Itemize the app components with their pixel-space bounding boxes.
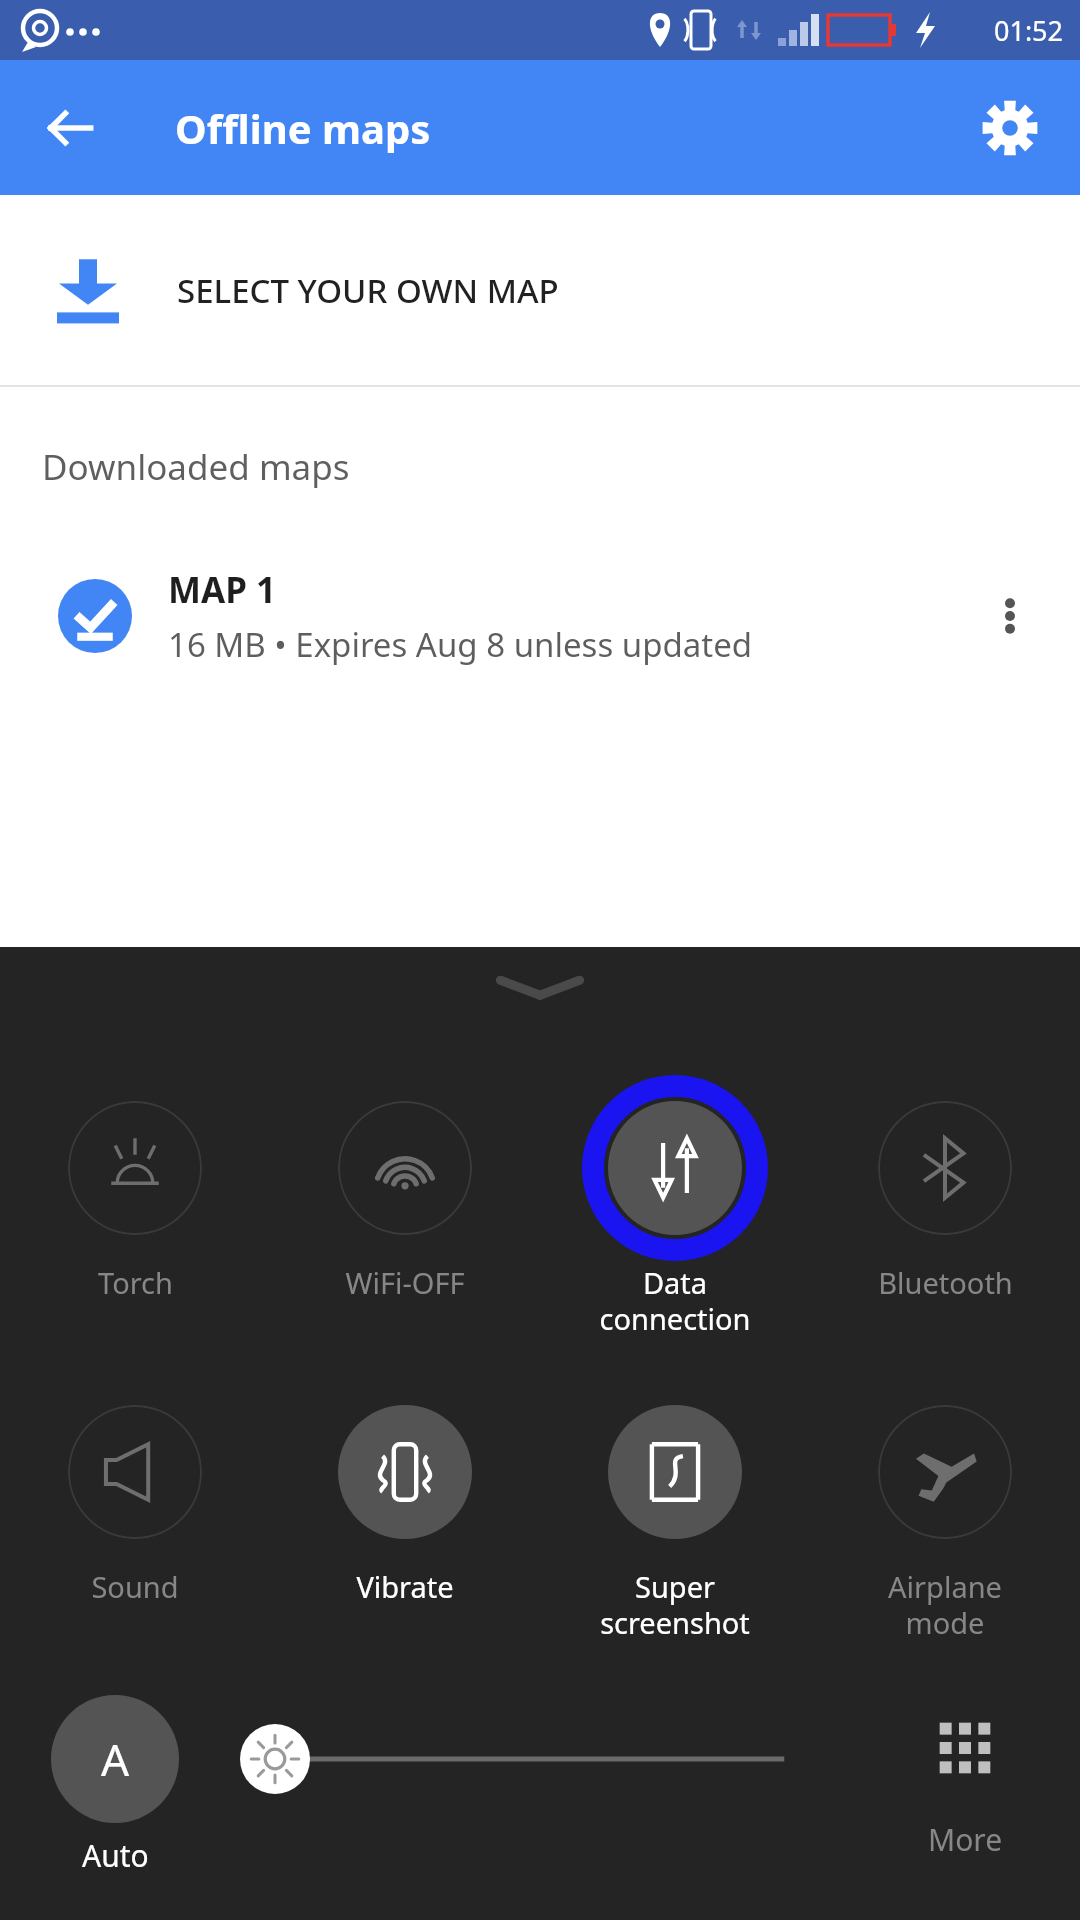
staticText: Super screenshot: [600, 1567, 750, 1643]
staticText: SELECT YOUR OWN MAP: [177, 268, 559, 313]
button[interactable]: Settings: [968, 86, 1052, 170]
staticText: Auto: [82, 1835, 149, 1876]
staticText: Data connection: [599, 1263, 751, 1339]
button[interactable]: Torch: [0, 1073, 270, 1302]
staticText: 16 MB • Expires Aug 8 unless updated: [168, 622, 753, 667]
staticText: Offline maps: [175, 101, 431, 155]
staticText: Sound: [91, 1567, 179, 1606]
button[interactable]: MAP 1: [0, 541, 1080, 691]
button[interactable]: Back: [30, 88, 110, 168]
staticText: WiFi-OFF: [345, 1263, 465, 1302]
staticText: Bluetooth: [878, 1263, 1013, 1302]
button[interactable]: WiFi-OFF: [270, 1073, 540, 1302]
button[interactable]: Sound: [0, 1377, 270, 1606]
button[interactable]: More: [850, 1695, 1080, 1860]
button[interactable]: Airplane mode: [810, 1377, 1080, 1643]
button[interactable]: Data connection: [540, 1073, 810, 1339]
staticText: 01:52: [994, 12, 1064, 49]
button[interactable]: More options: [962, 568, 1058, 664]
button[interactable]: Super screenshot: [540, 1377, 810, 1643]
staticText: Torch: [98, 1263, 173, 1302]
button[interactable]: SELECT YOUR OWN MAP: [0, 195, 1080, 385]
staticText: Vibrate: [356, 1567, 454, 1606]
staticText: Airplane mode: [888, 1567, 1002, 1643]
staticText: A: [101, 1729, 130, 1789]
button[interactable]: A: [0, 1695, 230, 1876]
staticText: MAP 1: [168, 566, 277, 614]
staticText: More: [928, 1819, 1003, 1860]
button[interactable]: Brightness: [230, 1695, 826, 1823]
button[interactable]: Vibrate: [270, 1377, 540, 1606]
staticText: Downloaded maps: [42, 443, 350, 491]
button[interactable]: Bluetooth: [810, 1073, 1080, 1302]
